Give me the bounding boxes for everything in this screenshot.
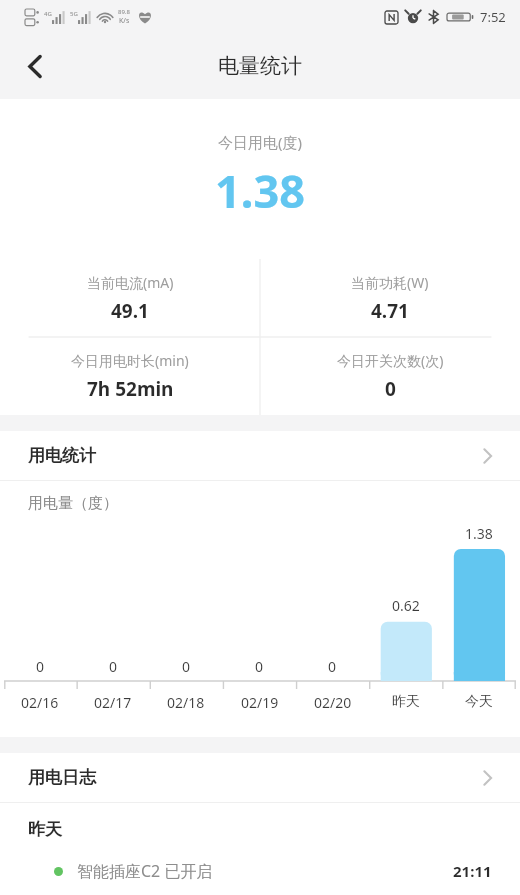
staticText: 0 [328, 657, 337, 676]
button[interactable]: 用电日志 [0, 753, 520, 802]
staticText: 当前功耗(W) [351, 273, 429, 292]
staticText: 02/16 [21, 693, 59, 712]
staticText: 今日开关次数(次) [337, 351, 444, 370]
staticText: 0 [385, 376, 396, 402]
staticText: 5G [70, 10, 78, 18]
button[interactable]: 智能插座C2 已开启 [0, 860, 520, 882]
staticText: 用电量（度） [28, 494, 118, 513]
staticText: 0.62 [392, 596, 420, 615]
staticText: 今天 [465, 693, 493, 711]
staticText: 0 [36, 657, 45, 676]
staticText: 4.71 [371, 298, 409, 324]
staticText: 1.38 [0, 160, 520, 221]
staticText: 今日用电时长(min) [71, 351, 189, 370]
staticText: 昨天 [392, 693, 420, 711]
staticText: 89.8 [118, 8, 130, 16]
staticText: 智能插座C2 已开启 [77, 860, 213, 882]
staticText: 昨天 [28, 819, 62, 840]
staticText: 7h 52min [87, 376, 174, 402]
staticText: 02/20 [314, 693, 352, 712]
staticText: 今日用电(度) [0, 132, 520, 152]
staticText: 0 [182, 657, 191, 676]
staticText: 用电日志 [28, 767, 96, 788]
staticText: 当前电流(mA) [87, 273, 174, 292]
staticText: 02/17 [94, 693, 132, 712]
staticText: K/s [119, 16, 130, 26]
staticText: 02/18 [167, 693, 205, 712]
staticText: 0 [255, 657, 264, 676]
staticText: 1.38 [465, 524, 493, 543]
staticText: 21:11 [453, 861, 492, 881]
staticText: 49.1 [111, 298, 149, 324]
staticText: 02/19 [241, 693, 279, 712]
staticText: 7:52 [480, 8, 506, 26]
staticText: 4G [44, 10, 52, 18]
button[interactable]: 用电统计 [0, 431, 520, 480]
staticText: 0 [109, 657, 118, 676]
staticText: 电量统计 [218, 53, 302, 79]
button[interactable]: Back [10, 41, 60, 91]
staticText: 用电统计 [28, 445, 96, 466]
